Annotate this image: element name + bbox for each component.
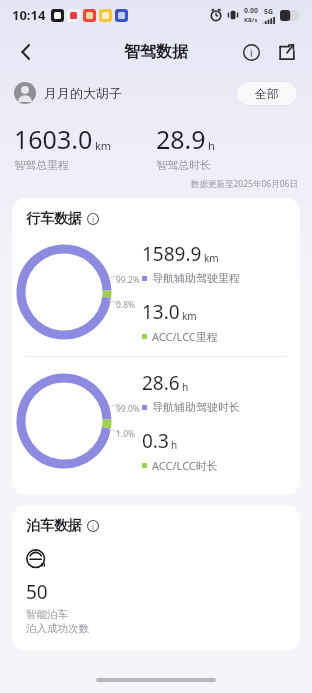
- staticText: 智驾总时长: [156, 158, 211, 172]
- button[interactable]: Share: [270, 35, 304, 69]
- staticText: h: [182, 380, 189, 394]
- staticText: ACC/LCC时长: [152, 458, 218, 473]
- staticText: 0.3: [142, 428, 169, 454]
- button[interactable]: 行车数据: [26, 210, 99, 228]
- staticText: 数据更新至2025年06月06日: [191, 178, 298, 190]
- staticText: i: [92, 521, 95, 532]
- staticText: 28.9: [156, 122, 206, 156]
- staticText: ACC/LCC里程: [152, 329, 218, 344]
- staticText: i: [92, 214, 95, 225]
- staticText: km: [95, 138, 112, 153]
- staticText: 月月的大胡子: [44, 85, 122, 101]
- staticText: h: [208, 138, 215, 153]
- staticText: 泊入成功次数: [26, 622, 89, 635]
- button[interactable]: 泊车数据: [26, 517, 99, 535]
- button[interactable]: Back: [6, 32, 46, 72]
- staticText: km: [182, 309, 197, 323]
- staticText: 13.0: [142, 299, 180, 325]
- staticText: KB/s: [244, 16, 258, 24]
- staticText: 智驾总里程: [14, 158, 69, 172]
- staticText: 全部: [255, 86, 279, 101]
- button[interactable]: 月月的大胡子: [14, 82, 122, 104]
- staticText: i: [250, 46, 253, 60]
- button[interactable]: Information: [234, 35, 268, 69]
- staticText: h: [171, 438, 178, 452]
- staticText: 行车数据: [26, 210, 82, 228]
- staticText: 99.0%: [116, 403, 140, 415]
- staticText: 0.00: [244, 6, 258, 16]
- staticText: 1589.9: [142, 241, 202, 267]
- staticText: 泊车数据: [26, 517, 82, 535]
- staticText: 智能泊车: [26, 608, 68, 621]
- staticText: 1603.0: [14, 122, 93, 156]
- staticText: 50: [26, 579, 48, 605]
- staticText: 1.0%: [116, 428, 136, 440]
- staticText: 导航辅助驾驶里程: [152, 271, 240, 285]
- staticText: 导航辅助驾驶时长: [152, 400, 240, 414]
- staticText: km: [204, 251, 219, 265]
- staticText: 0.8%: [116, 299, 136, 311]
- staticText: 99.2%: [116, 274, 140, 286]
- staticText: 28.6: [142, 370, 180, 396]
- button[interactable]: 全部: [236, 81, 298, 106]
- staticText: 10:14: [12, 6, 46, 24]
- staticText: 5G: [264, 7, 274, 17]
- staticText: 智驾数据: [124, 42, 188, 62]
